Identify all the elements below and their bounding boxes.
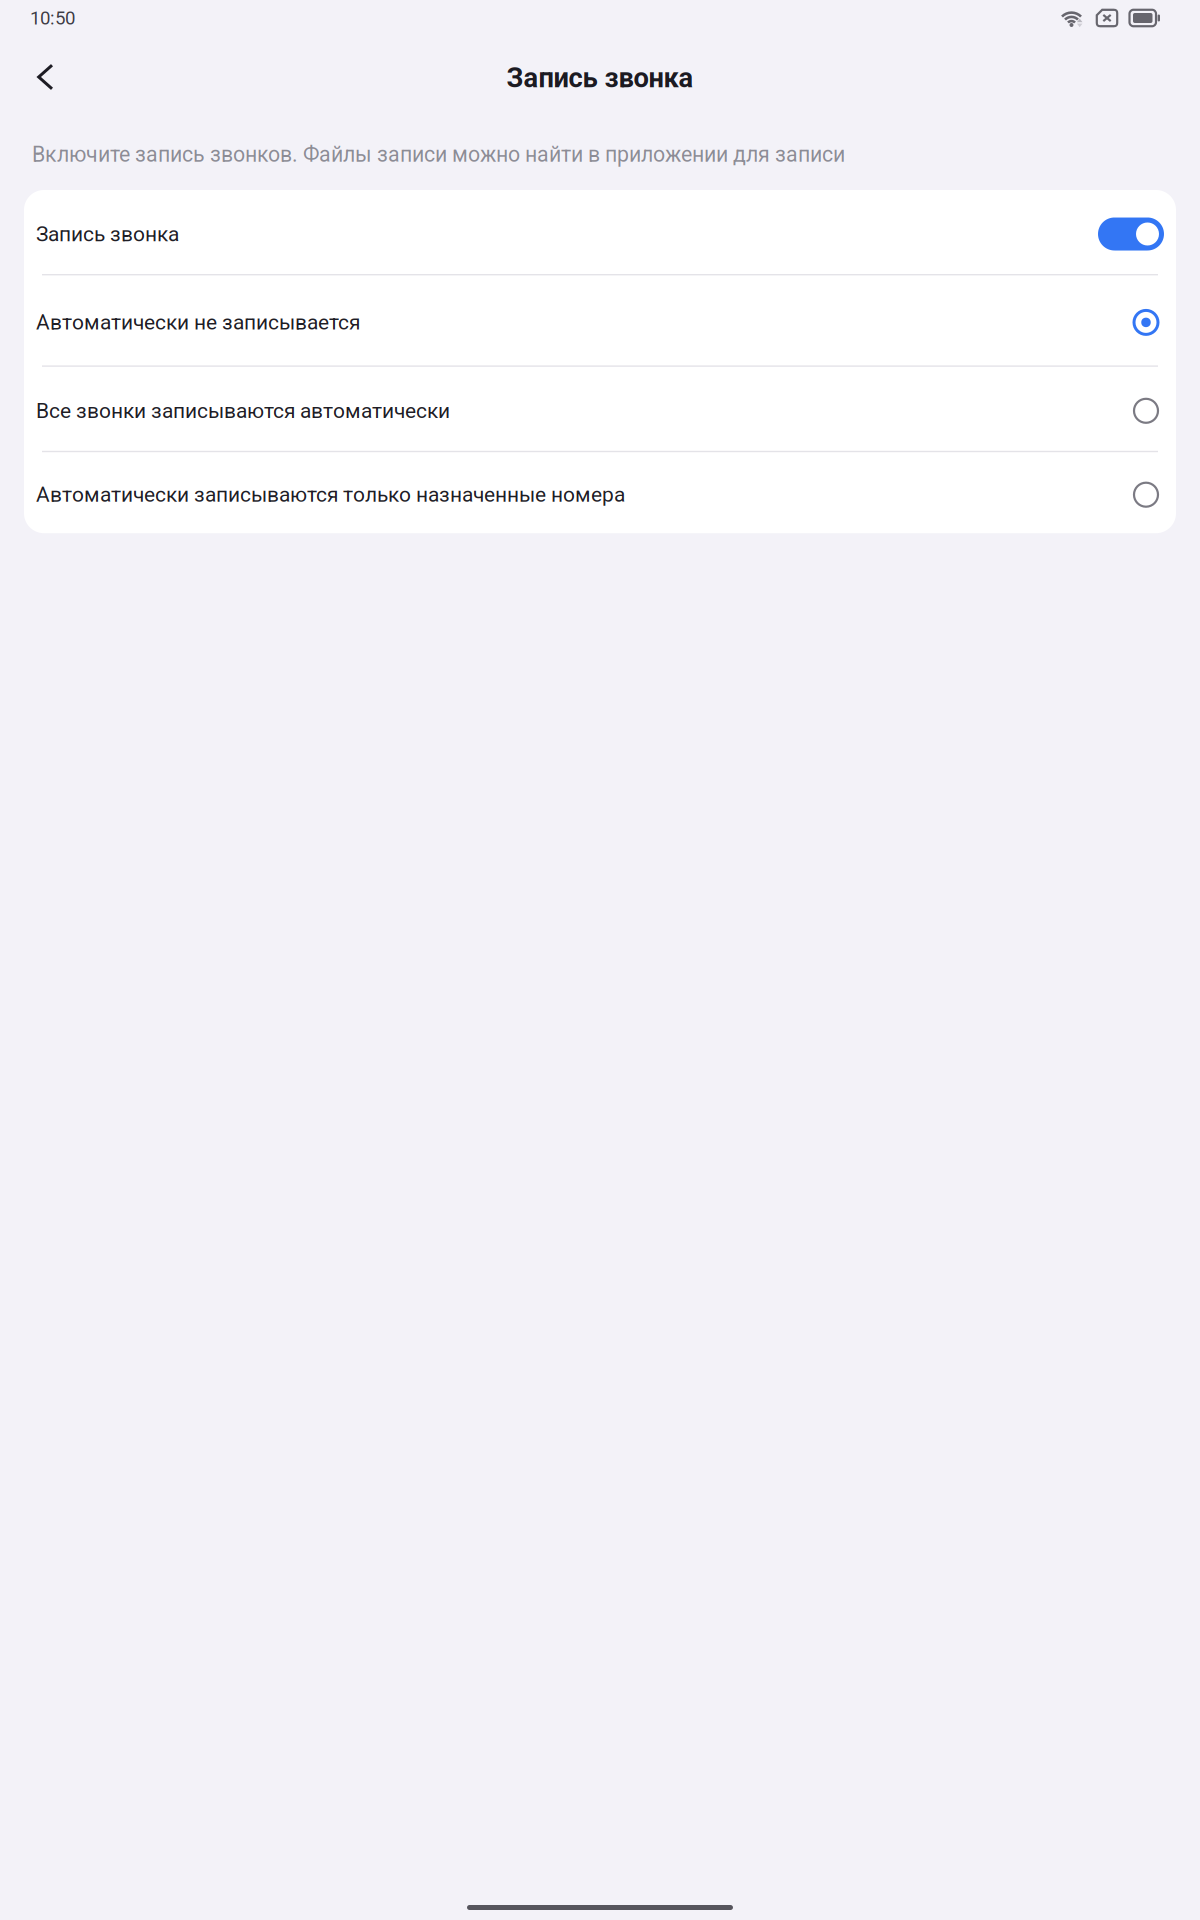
staticText: Запись звонка	[36, 222, 179, 246]
staticText: Автоматически не записывается	[36, 310, 360, 335]
staticText: Автоматически записываются только назнач…	[36, 482, 625, 507]
button[interactable]: Автоматически записываются только назнач…	[24, 452, 1176, 533]
staticText: 10:50	[30, 7, 75, 29]
button[interactable]: Запись звонка	[24, 190, 1176, 274]
button[interactable]: Автоматически не записывается	[24, 275, 1176, 365]
staticText: Включите запись звонков. Файлы записи мо…	[32, 142, 845, 167]
button[interactable]: Все звонки записываются автоматически	[24, 367, 1176, 451]
button[interactable]: Назад	[0, 50, 80, 103]
staticText: Все звонки записываются автоматически	[36, 398, 450, 423]
staticText: Запись звонка	[506, 62, 693, 94]
